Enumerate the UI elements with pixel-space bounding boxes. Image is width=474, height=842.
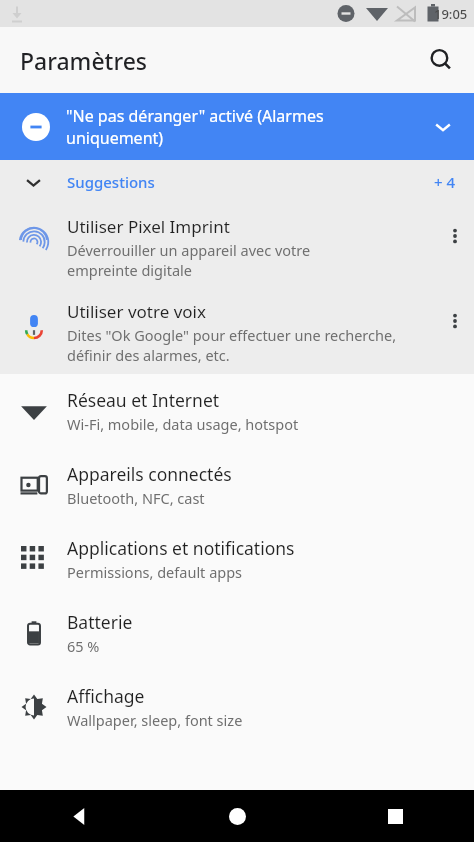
button[interactable]: Rechercher	[417, 36, 465, 84]
button[interactable]: Aperçu	[371, 792, 419, 840]
staticText: Appareils connectés	[67, 462, 232, 486]
staticText: Applications et notifications	[67, 536, 295, 560]
staticText: Batterie	[67, 610, 133, 634]
staticText: Affichage	[67, 684, 145, 708]
button[interactable]: Applications et notifications	[0, 522, 474, 596]
staticText: "Ne pas déranger" activé (Alarmes unique…	[66, 105, 418, 149]
staticText: Bluetooth, NFC, cast	[67, 488, 205, 508]
button[interactable]: Plus d'options	[436, 306, 474, 336]
staticText: + 4	[434, 172, 456, 192]
staticText: Wallpaper, sleep, font size	[67, 710, 243, 730]
staticText: Utiliser Pixel Imprint	[67, 215, 230, 238]
button[interactable]: Réseau et Internet	[0, 374, 474, 448]
button[interactable]: Suggestions	[0, 160, 474, 204]
button[interactable]: Utiliser votre voix	[0, 289, 474, 374]
button[interactable]: Affichage	[0, 670, 474, 744]
staticText: 19:05	[434, 5, 468, 23]
button[interactable]: Plus d'options	[436, 221, 474, 251]
button[interactable]: Retour	[55, 792, 103, 840]
button[interactable]: "Ne pas déranger" activé (Alarmes unique…	[0, 93, 474, 160]
staticText: Permissions, default apps	[67, 562, 243, 582]
staticText: Déverrouiller un appareil avec votre emp…	[67, 240, 311, 280]
staticText: Dites "Ok Google" pour effectuer une rec…	[67, 325, 397, 365]
button[interactable]: Accueil	[213, 792, 261, 840]
staticText: Utiliser votre voix	[67, 300, 206, 323]
button[interactable]: Batterie	[0, 596, 474, 670]
staticText: Paramètres	[20, 45, 148, 76]
button[interactable]: Utiliser Pixel Imprint	[0, 204, 474, 289]
other: Développer	[426, 110, 460, 144]
staticText: Réseau et Internet	[67, 388, 220, 412]
staticText: Wi-Fi, mobile, data usage, hotspot	[67, 414, 299, 434]
staticText: Suggestions	[67, 172, 155, 192]
staticText: 65 %	[67, 636, 100, 656]
button[interactable]: Appareils connectés	[0, 448, 474, 522]
